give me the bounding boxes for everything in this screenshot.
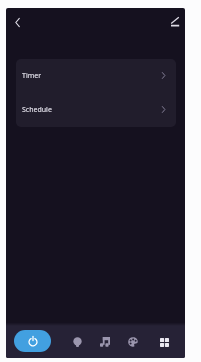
button[interactable]: Schedule bbox=[16, 93, 176, 127]
button[interactable]: Power bbox=[14, 330, 51, 352]
button[interactable]: Apps bbox=[153, 331, 175, 353]
button[interactable]: Scenes bbox=[122, 331, 144, 353]
button[interactable]: Timer bbox=[16, 59, 176, 93]
button[interactable]: Music bbox=[94, 331, 116, 353]
staticText: Timer bbox=[22, 71, 42, 81]
staticText: Schedule bbox=[22, 105, 52, 115]
button[interactable]: Lights bbox=[66, 331, 88, 353]
button[interactable]: Edit bbox=[164, 11, 185, 32]
button[interactable]: Back bbox=[7, 12, 28, 33]
